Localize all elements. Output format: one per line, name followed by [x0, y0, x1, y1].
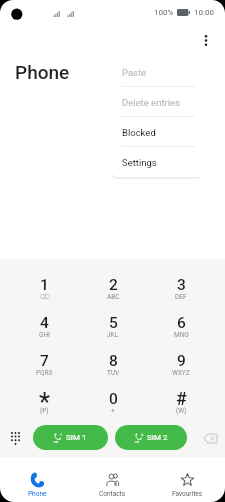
- staticText: MNO: [174, 331, 189, 339]
- button[interactable]: 3: [147, 269, 215, 307]
- staticText: Settings: [122, 157, 157, 168]
- staticText: Phone: [15, 61, 70, 83]
- staticText: 5: [109, 314, 118, 332]
- button[interactable]: 0: [79, 383, 147, 421]
- button[interactable]: 6: [147, 307, 215, 345]
- button[interactable]: Settings: [112, 147, 202, 177]
- staticText: TUV: [107, 369, 120, 377]
- staticText: 10:00: [194, 8, 214, 17]
- button[interactable]: Blocked: [112, 117, 202, 147]
- staticText: JKL: [107, 331, 119, 339]
- button[interactable]: 9: [147, 345, 215, 383]
- staticText: SIM 1: [66, 433, 87, 442]
- staticText: +: [111, 407, 115, 415]
- staticText: #: [176, 388, 187, 409]
- staticText: SIM 2: [147, 433, 168, 442]
- staticText: (P): [40, 407, 49, 415]
- button[interactable]: 5: [79, 307, 147, 345]
- staticText: 7: [40, 352, 49, 370]
- staticText: WXYZ: [172, 369, 190, 377]
- staticText: 2: [109, 276, 118, 294]
- staticText: (W): [176, 407, 187, 415]
- staticText: PQRS: [36, 369, 53, 377]
- staticText: 8: [109, 352, 118, 370]
- button[interactable]: 1: [10, 269, 79, 307]
- button[interactable]: Backspace: [197, 425, 223, 451]
- staticText: *: [39, 388, 51, 417]
- staticText: Favourites: [172, 490, 203, 498]
- staticText: 3: [177, 276, 186, 294]
- staticText: 4: [40, 314, 49, 332]
- button[interactable]: Hide keypad: [4, 425, 26, 451]
- button[interactable]: SIM 2: [115, 425, 187, 450]
- button[interactable]: *: [10, 383, 79, 421]
- staticText: 100%: [154, 8, 174, 17]
- button[interactable]: Paste: [112, 57, 202, 87]
- button[interactable]: 8: [79, 345, 147, 383]
- button[interactable]: #: [147, 383, 215, 421]
- button[interactable]: Delete entries: [112, 87, 202, 117]
- staticText: Blocked: [122, 127, 156, 138]
- staticText: 9: [177, 352, 186, 370]
- button[interactable]: SIM 1: [33, 425, 108, 450]
- staticText: Contacts: [99, 490, 126, 498]
- staticText: 0: [109, 390, 118, 408]
- staticText: Phone: [28, 490, 47, 498]
- button[interactable]: 4: [10, 307, 79, 345]
- button[interactable]: Favourites: [150, 457, 225, 502]
- staticText: 1: [40, 276, 49, 294]
- button[interactable]: More options: [194, 28, 218, 52]
- button[interactable]: Contacts: [75, 457, 150, 502]
- staticText: Delete entries: [122, 97, 180, 108]
- button[interactable]: 7: [10, 345, 79, 383]
- staticText: GHI: [39, 331, 50, 339]
- staticText: ABC: [107, 293, 120, 301]
- button[interactable]: Phone: [0, 457, 75, 502]
- staticText: DEF: [175, 293, 187, 301]
- button[interactable]: 2: [79, 269, 147, 307]
- staticText: Paste: [122, 67, 147, 78]
- staticText: 6: [177, 314, 186, 332]
